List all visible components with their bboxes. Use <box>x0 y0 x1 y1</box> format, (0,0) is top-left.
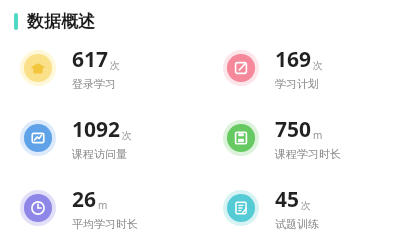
staticText: 数据概述 <box>27 11 95 32</box>
staticText: 26 <box>72 185 97 214</box>
other: 试题训练 <box>223 190 259 226</box>
staticText: 617 <box>72 45 109 74</box>
staticText: 45 <box>275 185 300 214</box>
button[interactable]: 平均学习时长 <box>0 185 203 231</box>
staticText: 课程访问量 <box>72 147 127 161</box>
staticText: 平均学习时长 <box>72 217 138 231</box>
staticText: 试题训练 <box>275 217 319 231</box>
staticText: 次 <box>313 59 323 72</box>
other: 课程学习时长 <box>223 120 259 156</box>
staticText: 169 <box>275 45 312 74</box>
staticText: 登录学习 <box>72 77 116 91</box>
staticText: 次 <box>301 199 311 212</box>
button[interactable]: 试题训练 <box>203 185 407 231</box>
button[interactable]: 数据概述 <box>0 11 407 32</box>
staticText: 1092 <box>72 115 121 144</box>
button[interactable]: 课程访问量 <box>0 115 203 161</box>
other: 学习计划 <box>223 50 259 86</box>
other: 平均学习时长 <box>20 190 56 226</box>
button[interactable]: 课程学习时长 <box>203 115 407 161</box>
staticText: 次 <box>122 129 132 142</box>
button[interactable]: 学习计划 <box>203 45 407 91</box>
other: 登录学习 <box>20 50 56 86</box>
staticText: 次 <box>110 59 120 72</box>
other: 课程访问量 <box>20 120 56 156</box>
staticText: 学习计划 <box>275 77 319 91</box>
staticText: 课程学习时长 <box>275 147 341 161</box>
staticText: 750 <box>275 115 312 144</box>
button[interactable]: 登录学习 <box>0 45 203 91</box>
staticText: m <box>313 128 323 142</box>
staticText: m <box>98 198 108 212</box>
